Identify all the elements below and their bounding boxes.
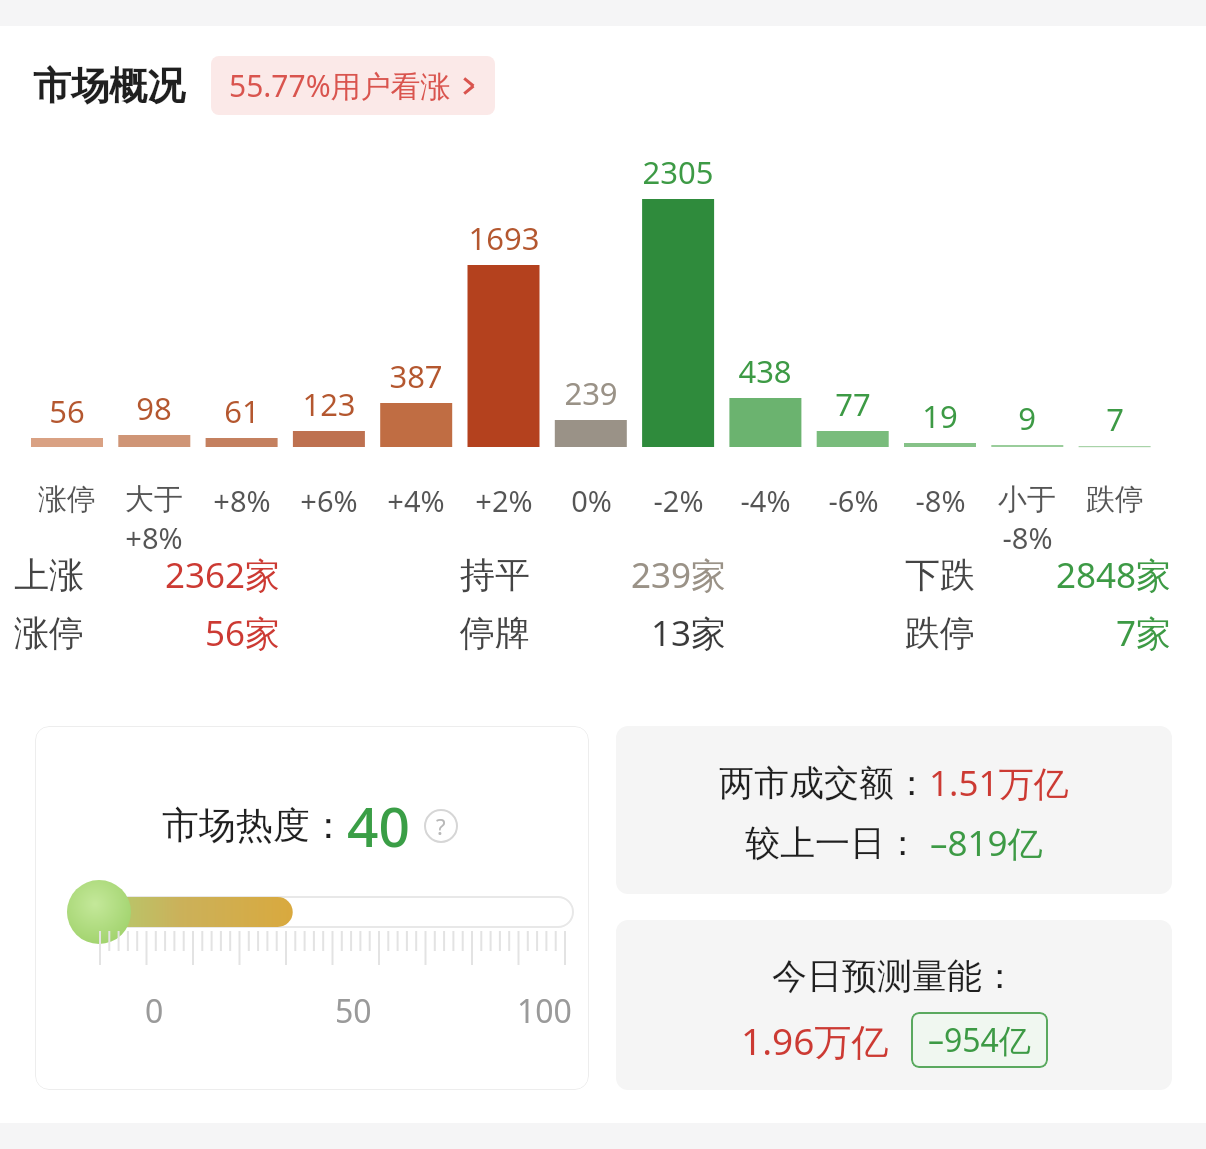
button[interactable]: 55.77%用户看涨 — [211, 56, 495, 115]
staticText: +8% — [125, 518, 183, 557]
staticText: +8% — [213, 481, 271, 520]
staticText: 1693 — [444, 217, 564, 259]
staticText: 239 — [531, 372, 651, 414]
staticText: -6% — [828, 481, 879, 520]
staticText: 涨停 — [38, 481, 96, 518]
staticText: -8% — [1002, 518, 1053, 557]
staticText: 较上一日： — [745, 821, 920, 865]
staticText: –819亿 — [930, 819, 1043, 867]
staticText: 9 — [967, 397, 1087, 439]
staticText: 两市成交额： — [719, 761, 929, 805]
staticText: 市场概况 — [33, 62, 185, 110]
button[interactable]: 说明 — [424, 809, 458, 843]
staticText: 7 — [1055, 398, 1175, 440]
staticText: 下跌 — [905, 553, 975, 597]
staticText: 438 — [705, 350, 825, 392]
button[interactable]: 停牌 — [460, 609, 740, 657]
staticText: 1.51万亿 — [929, 759, 1069, 807]
staticText: 大于 — [125, 481, 183, 518]
staticText: +2% — [475, 481, 533, 520]
staticText: 100 — [517, 989, 572, 1033]
staticText: 56 — [7, 390, 127, 432]
staticText: 98 — [94, 387, 214, 429]
staticText: 市场热度： — [162, 802, 347, 849]
staticText: -8% — [915, 481, 966, 520]
staticText: 1.96万亿 — [741, 1015, 889, 1066]
button[interactable]: 涨停 — [14, 609, 294, 657]
staticText: 0 — [145, 989, 164, 1033]
staticText: 2848家 — [991, 551, 1171, 599]
staticText: 跌停 — [1086, 481, 1144, 518]
button[interactable]: 下跌 — [905, 551, 1185, 599]
staticText: 55.77%用户看涨 — [229, 65, 451, 106]
staticText: +4% — [387, 481, 445, 520]
staticText: 19 — [880, 395, 1000, 437]
staticText: 40 — [347, 788, 410, 863]
staticText: 50 — [335, 989, 372, 1033]
staticText: 停牌 — [460, 611, 530, 655]
staticText: 2362家 — [100, 551, 280, 599]
staticText: 61 — [182, 390, 302, 432]
staticText: 上涨 — [14, 553, 84, 597]
button[interactable]: 持平 — [460, 551, 740, 599]
staticText: 小于 — [998, 481, 1056, 518]
button[interactable]: 两市成交额： — [616, 726, 1172, 894]
staticText: 77 — [793, 383, 913, 425]
staticText: 7家 — [991, 609, 1171, 657]
staticText: 今日预测量能： — [772, 954, 1017, 998]
staticText: -4% — [740, 481, 791, 520]
staticText: 123 — [269, 383, 389, 425]
button[interactable]: 跌停 — [905, 609, 1185, 657]
staticText: –954亿 — [928, 1018, 1031, 1062]
staticText: 2305 — [618, 151, 738, 193]
staticText: 0% — [571, 481, 612, 520]
staticText: 387 — [356, 355, 476, 397]
button[interactable]: 今日预测量能： — [616, 920, 1172, 1090]
button[interactable]: 上涨 — [14, 551, 294, 599]
staticText: 持平 — [460, 553, 530, 597]
staticText: 跌停 — [905, 611, 975, 655]
staticText: ? — [436, 811, 446, 841]
staticText: 239家 — [546, 551, 726, 599]
staticText: 涨停 — [14, 611, 84, 655]
staticText: +6% — [300, 481, 358, 520]
button[interactable]: 市场热度： — [35, 726, 589, 1090]
staticText: 56家 — [100, 609, 280, 657]
staticText: 13家 — [546, 609, 726, 657]
staticText: -2% — [653, 481, 704, 520]
